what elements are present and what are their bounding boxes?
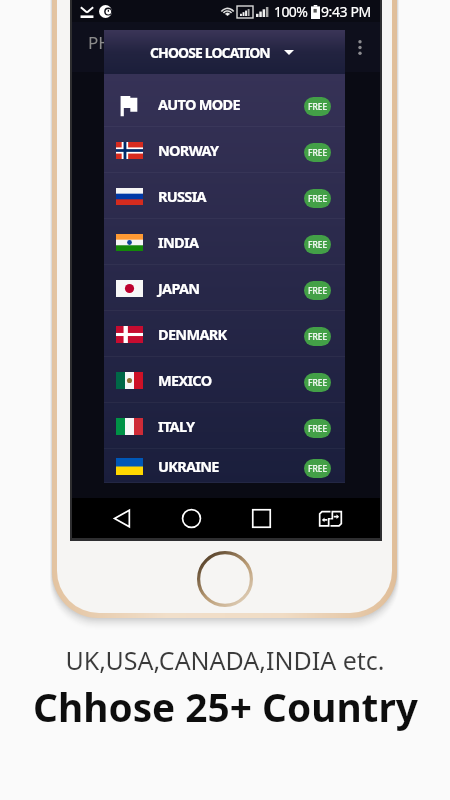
staticText: JAPAN xyxy=(158,278,200,298)
staticText: CHOOSE LOCATION xyxy=(150,43,270,62)
staticText: FREE xyxy=(308,239,328,251)
staticText: PHONE VPN xyxy=(88,31,185,54)
staticText: FREE xyxy=(308,463,328,475)
staticText: INDIA xyxy=(158,232,199,252)
button[interactable]: INDIA xyxy=(104,219,345,265)
staticText: FREE xyxy=(308,147,328,159)
button[interactable]: CHOOSE LOCATION xyxy=(104,30,345,74)
staticText: FREE xyxy=(308,193,328,205)
button[interactable]: RUSSIA xyxy=(104,173,345,219)
button[interactable]: Back xyxy=(102,498,142,538)
button[interactable]: DENMARK xyxy=(104,311,345,357)
button[interactable]: ITALY xyxy=(104,403,345,449)
button[interactable]: Home xyxy=(171,498,211,538)
button[interactable]: Split screen xyxy=(310,498,350,538)
staticText: FREE xyxy=(308,423,328,435)
button[interactable]: Recent apps xyxy=(241,498,281,538)
staticText: FREE xyxy=(308,331,328,343)
staticText: 9:43 PM xyxy=(321,2,371,21)
staticText: MEXICO xyxy=(158,370,212,390)
staticText: RUSSIA xyxy=(158,186,206,206)
button[interactable]: More options xyxy=(345,32,375,62)
staticText: FREE xyxy=(308,285,328,297)
staticText: AUTO MODE xyxy=(158,94,240,114)
staticText: FREE xyxy=(308,101,328,113)
staticText: DENMARK xyxy=(158,324,227,344)
staticText: UKRAINE xyxy=(158,456,219,476)
button[interactable]: NORWAY xyxy=(104,127,345,173)
staticText: FREE xyxy=(308,377,328,389)
button[interactable]: MEXICO xyxy=(104,357,345,403)
staticText: Chhose 25+ Country xyxy=(33,681,418,734)
staticText: ITALY xyxy=(158,416,195,436)
staticText: NORWAY xyxy=(158,140,219,160)
button[interactable]: Home button xyxy=(197,551,253,607)
button[interactable]: UKRAINE xyxy=(104,449,345,483)
staticText: UK,USA,CANADA,INDIA etc. xyxy=(65,643,385,677)
button[interactable]: JAPAN xyxy=(104,265,345,311)
button[interactable]: AUTO MODE xyxy=(104,81,345,127)
staticText: 100% xyxy=(274,2,308,21)
